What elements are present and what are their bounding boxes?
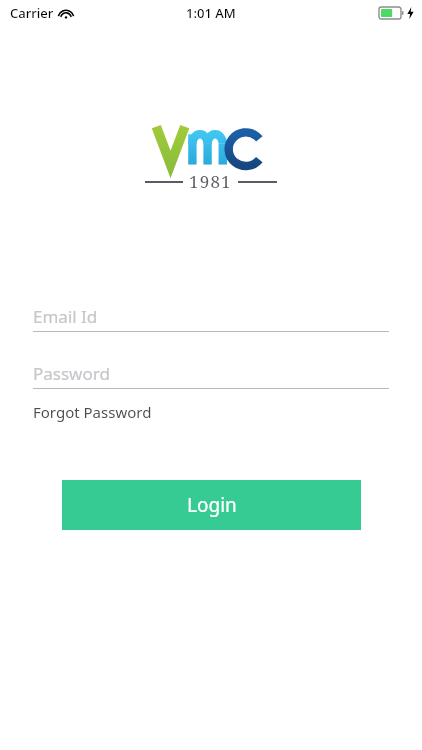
button[interactable]: Email Id: [33, 301, 389, 331]
button[interactable]: Forgot Password: [33, 399, 152, 425]
staticText: Login: [187, 492, 237, 518]
button[interactable]: Password: [33, 358, 389, 388]
button[interactable]: Login: [62, 480, 361, 530]
staticText: 1981: [189, 170, 232, 193]
staticText: Email Id: [33, 305, 98, 328]
staticText: Password: [33, 362, 110, 385]
staticText: 1:01 AM: [186, 4, 236, 22]
staticText: Carrier: [10, 4, 54, 22]
staticText: Forgot Password: [33, 402, 152, 422]
